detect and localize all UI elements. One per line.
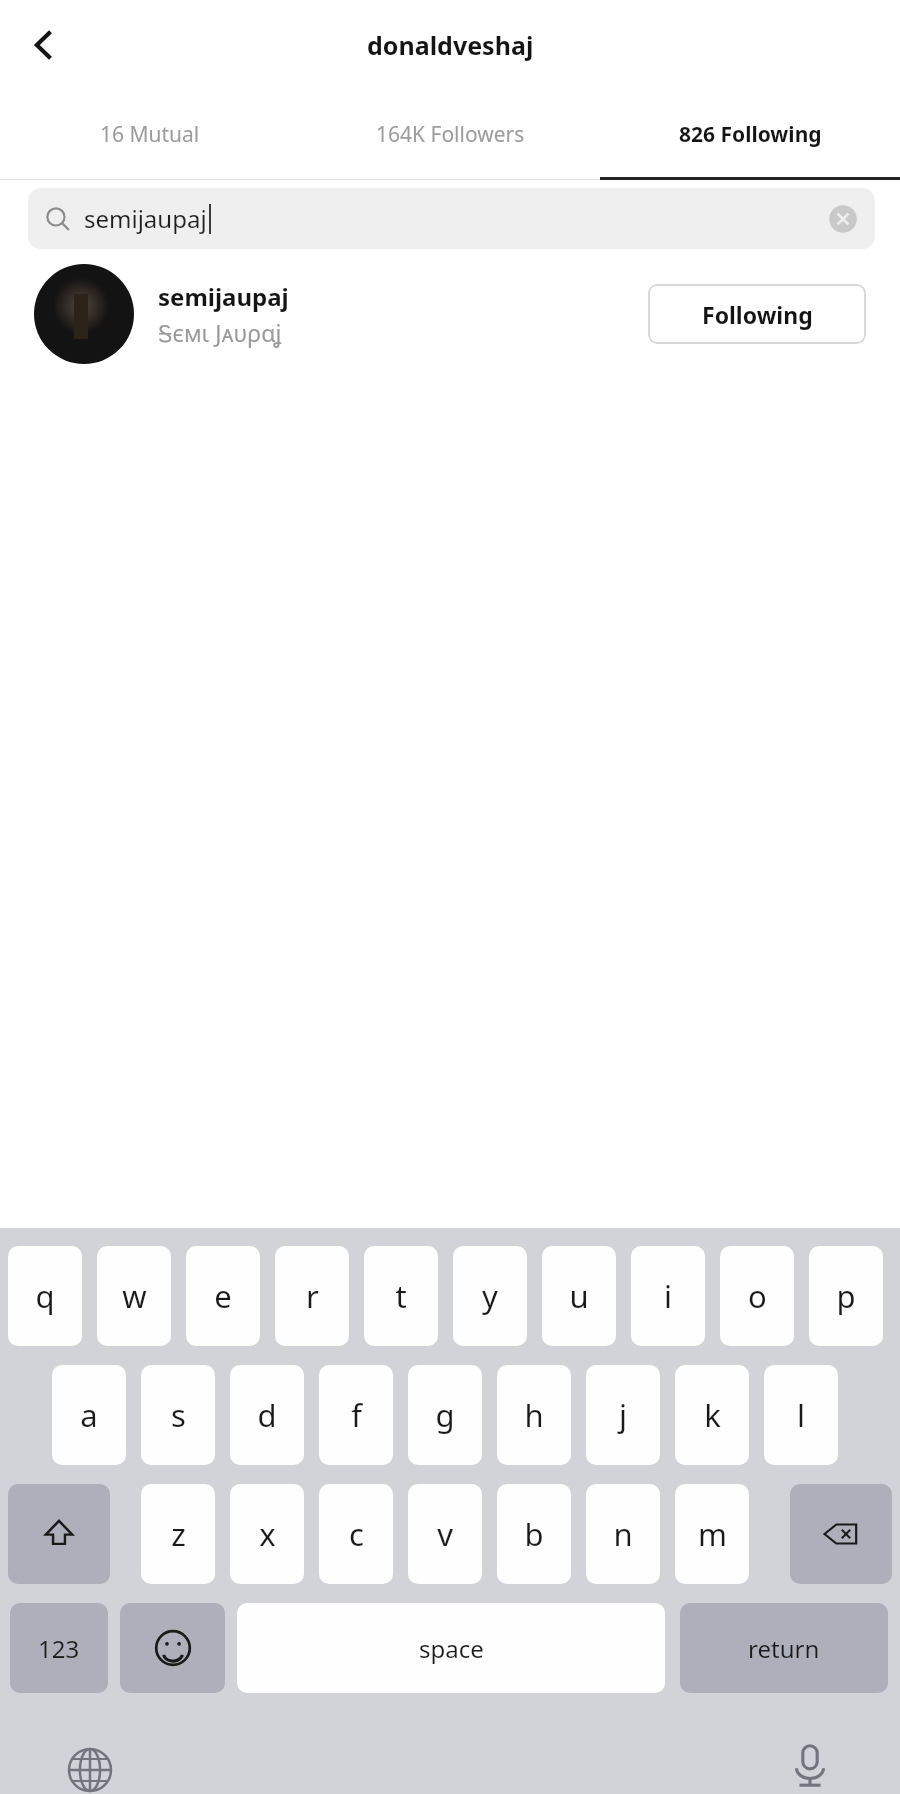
button[interactable]: 826 Following bbox=[600, 89, 900, 180]
staticText: t bbox=[395, 1275, 407, 1317]
staticText: 164K Followers bbox=[376, 120, 525, 149]
staticText: space bbox=[419, 1632, 484, 1665]
staticText: donaldveshaj bbox=[367, 28, 534, 62]
button[interactable]: o bbox=[720, 1246, 794, 1346]
staticText: o bbox=[748, 1275, 767, 1317]
button[interactable]: k bbox=[675, 1365, 749, 1465]
button[interactable]: Back bbox=[8, 9, 80, 81]
button[interactable]: semijaupaj bbox=[28, 188, 875, 249]
staticText: i bbox=[664, 1275, 672, 1317]
staticText: v bbox=[437, 1513, 453, 1555]
staticText: semijaupaj bbox=[158, 280, 289, 313]
button[interactable]: h bbox=[497, 1365, 571, 1465]
button[interactable]: Voice input bbox=[778, 1733, 842, 1794]
staticText: n bbox=[613, 1513, 633, 1555]
button[interactable]: return bbox=[680, 1603, 888, 1693]
button[interactable]: 123 bbox=[10, 1603, 108, 1693]
button[interactable]: s bbox=[141, 1365, 215, 1465]
button[interactable]: q bbox=[8, 1246, 82, 1346]
staticText: b bbox=[524, 1513, 544, 1555]
button[interactable]: b bbox=[497, 1484, 571, 1584]
button[interactable]: j bbox=[586, 1365, 660, 1465]
staticText: semijaupaj bbox=[84, 202, 207, 235]
staticText: j bbox=[619, 1394, 627, 1436]
button[interactable]: y bbox=[453, 1246, 527, 1346]
button[interactable]: space bbox=[237, 1603, 665, 1693]
button[interactable]: f bbox=[319, 1365, 393, 1465]
staticText: return bbox=[748, 1632, 820, 1665]
button[interactable]: a bbox=[52, 1365, 126, 1465]
button[interactable]: n bbox=[586, 1484, 660, 1584]
staticText: m bbox=[698, 1513, 727, 1555]
staticText: h bbox=[524, 1394, 544, 1436]
staticText: q bbox=[35, 1275, 55, 1317]
staticText: e bbox=[214, 1275, 232, 1317]
button[interactable]: z bbox=[141, 1484, 215, 1584]
button[interactable]: l bbox=[764, 1365, 838, 1465]
staticText: u bbox=[569, 1275, 589, 1317]
button[interactable]: t bbox=[364, 1246, 438, 1346]
button[interactable]: Clear search bbox=[827, 203, 859, 235]
staticText: Ꭶємι Jᴀυραʝ bbox=[158, 317, 282, 348]
button[interactable]: e bbox=[186, 1246, 260, 1346]
button[interactable]: c bbox=[319, 1484, 393, 1584]
staticText: c bbox=[349, 1513, 364, 1555]
button[interactable]: Change keyboard language bbox=[58, 1738, 122, 1794]
button[interactable]: g bbox=[408, 1365, 482, 1465]
staticText: z bbox=[171, 1513, 186, 1555]
button[interactable]: Emoji bbox=[120, 1603, 225, 1693]
staticText: g bbox=[435, 1394, 455, 1436]
staticText: s bbox=[171, 1394, 186, 1436]
button[interactable]: x bbox=[230, 1484, 304, 1584]
staticText: 16 Mutual bbox=[100, 120, 200, 149]
button[interactable]: semijaupaj bbox=[0, 255, 900, 373]
staticText: d bbox=[257, 1394, 277, 1436]
staticText: Following bbox=[702, 299, 813, 330]
staticText: k bbox=[704, 1394, 721, 1436]
button[interactable]: w bbox=[97, 1246, 171, 1346]
button[interactable]: i bbox=[631, 1246, 705, 1346]
staticText: y bbox=[482, 1275, 498, 1317]
button[interactable]: m bbox=[675, 1484, 749, 1584]
staticText: a bbox=[80, 1394, 98, 1436]
button[interactable]: 16 Mutual bbox=[0, 89, 300, 180]
button[interactable]: Backspace bbox=[790, 1484, 892, 1584]
button[interactable]: d bbox=[230, 1365, 304, 1465]
staticText: r bbox=[306, 1275, 319, 1317]
button[interactable]: Following bbox=[648, 284, 866, 344]
button[interactable]: v bbox=[408, 1484, 482, 1584]
staticText: w bbox=[122, 1275, 147, 1317]
staticText: 826 Following bbox=[679, 120, 822, 149]
staticText: x bbox=[259, 1513, 276, 1555]
button[interactable]: u bbox=[542, 1246, 616, 1346]
staticText: l bbox=[797, 1394, 805, 1436]
button[interactable]: Shift bbox=[8, 1484, 110, 1584]
button[interactable]: r bbox=[275, 1246, 349, 1346]
staticText: 123 bbox=[38, 1632, 80, 1665]
staticText: p bbox=[836, 1275, 856, 1317]
button[interactable]: p bbox=[809, 1246, 883, 1346]
button[interactable]: 164K Followers bbox=[300, 89, 600, 180]
staticText: f bbox=[351, 1394, 362, 1436]
